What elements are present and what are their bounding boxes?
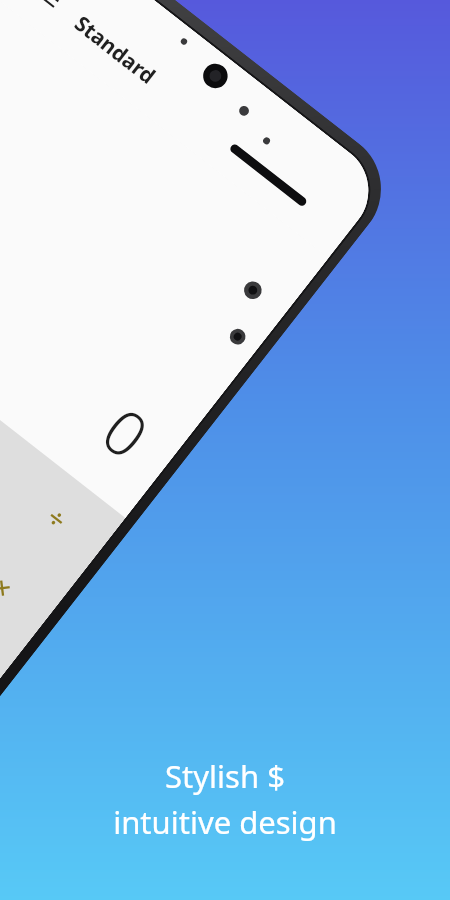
staticText: intuitive design <box>113 801 337 843</box>
button[interactable]: Menu <box>20 0 76 25</box>
staticText: Standard <box>69 9 162 91</box>
staticText: Stylish $ <box>165 755 285 797</box>
button[interactable]: − <box>0 590 18 728</box>
staticText: × <box>0 567 22 608</box>
button[interactable]: × <box>0 518 74 656</box>
staticText: 0 <box>86 388 166 477</box>
button[interactable]: ÷ <box>0 452 125 584</box>
button[interactable]: 1/x <box>0 386 41 518</box>
staticText: ÷ <box>39 498 76 538</box>
